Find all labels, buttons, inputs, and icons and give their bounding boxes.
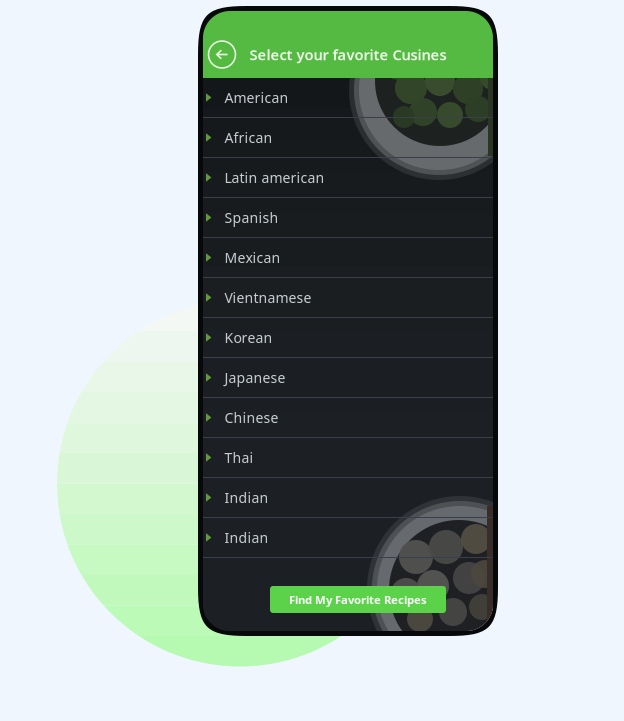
button[interactable]: American (203, 78, 493, 118)
button[interactable]: Find My Favorite Recipes (260, 586, 436, 613)
button[interactable]: Spanish (203, 198, 493, 238)
staticText: Find My Favorite Recipes (289, 592, 427, 607)
staticText: Mexican (224, 248, 280, 267)
button[interactable]: Indian (203, 518, 493, 558)
button[interactable]: Vientnamese (203, 278, 493, 318)
button[interactable]: African (203, 118, 493, 158)
button[interactable]: Japanese (203, 358, 493, 398)
staticText: Spanish (224, 208, 278, 227)
button[interactable]: Mexican (203, 238, 493, 278)
button[interactable]: Indian (203, 478, 493, 518)
button[interactable]: Korean (203, 318, 493, 358)
staticText: African (224, 128, 272, 147)
staticText: Japanese (224, 368, 285, 387)
button[interactable]: Thai (203, 438, 493, 478)
staticText: Latin american (224, 168, 324, 187)
staticText: Indian (224, 528, 268, 547)
staticText: American (224, 88, 288, 107)
staticText: Vientnamese (224, 288, 311, 307)
staticText: Korean (224, 328, 272, 347)
staticText: Indian (224, 488, 268, 507)
button[interactable]: Latin american (203, 158, 493, 198)
staticText: Thai (224, 448, 253, 467)
button[interactable]: Back (205, 37, 239, 71)
button[interactable]: Chinese (203, 398, 493, 438)
staticText: Chinese (224, 408, 278, 427)
staticText: Select your favorite Cusines (249, 44, 446, 64)
